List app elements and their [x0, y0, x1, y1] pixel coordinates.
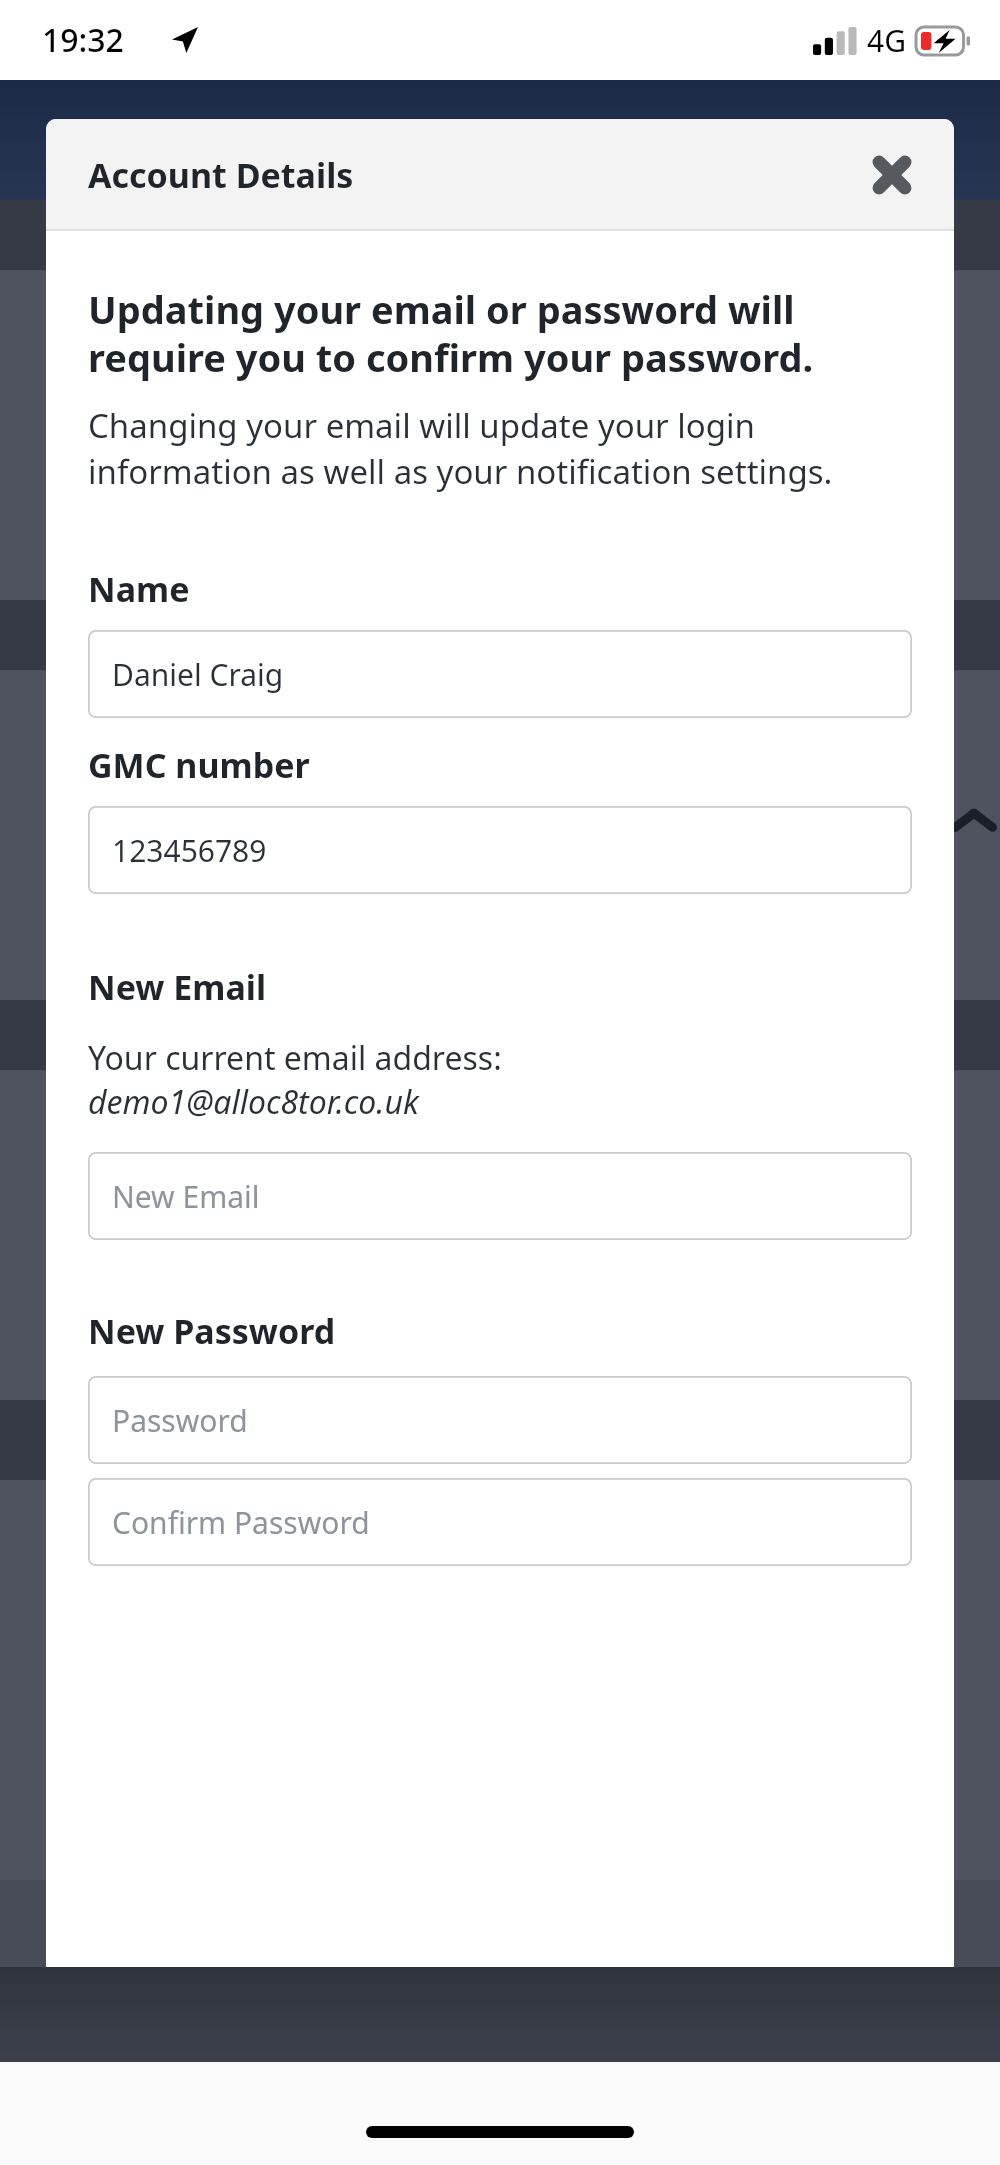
- staticText: Name: [88, 566, 190, 612]
- staticText: New Email: [112, 1176, 260, 1217]
- staticText: Password: [112, 1400, 248, 1441]
- staticText: Account Details: [88, 152, 354, 198]
- staticText: Confirm Password: [112, 1502, 370, 1543]
- staticText: New Email: [88, 964, 267, 1010]
- staticText: 4G: [867, 20, 906, 61]
- staticText: New Password: [88, 1308, 336, 1354]
- button[interactable]: Confirm Password: [88, 1478, 912, 1566]
- staticText: Updating your email or password will req…: [88, 283, 912, 383]
- staticText: Daniel Craig: [112, 654, 284, 695]
- staticText: 123456789: [112, 830, 267, 871]
- staticText: Changing your email will update your log…: [88, 403, 912, 494]
- button[interactable]: Close: [856, 139, 928, 211]
- button[interactable]: New Email: [88, 1152, 912, 1240]
- staticText: 19:32: [42, 18, 124, 62]
- staticText: demo1@alloc8tor.co.uk: [88, 1080, 419, 1124]
- button[interactable]: Password: [88, 1376, 912, 1464]
- button[interactable]: 123456789: [88, 806, 912, 894]
- staticText: Your current email address:: [88, 1036, 502, 1080]
- button[interactable]: Daniel Craig: [88, 630, 912, 718]
- staticText: GMC number: [88, 742, 310, 788]
